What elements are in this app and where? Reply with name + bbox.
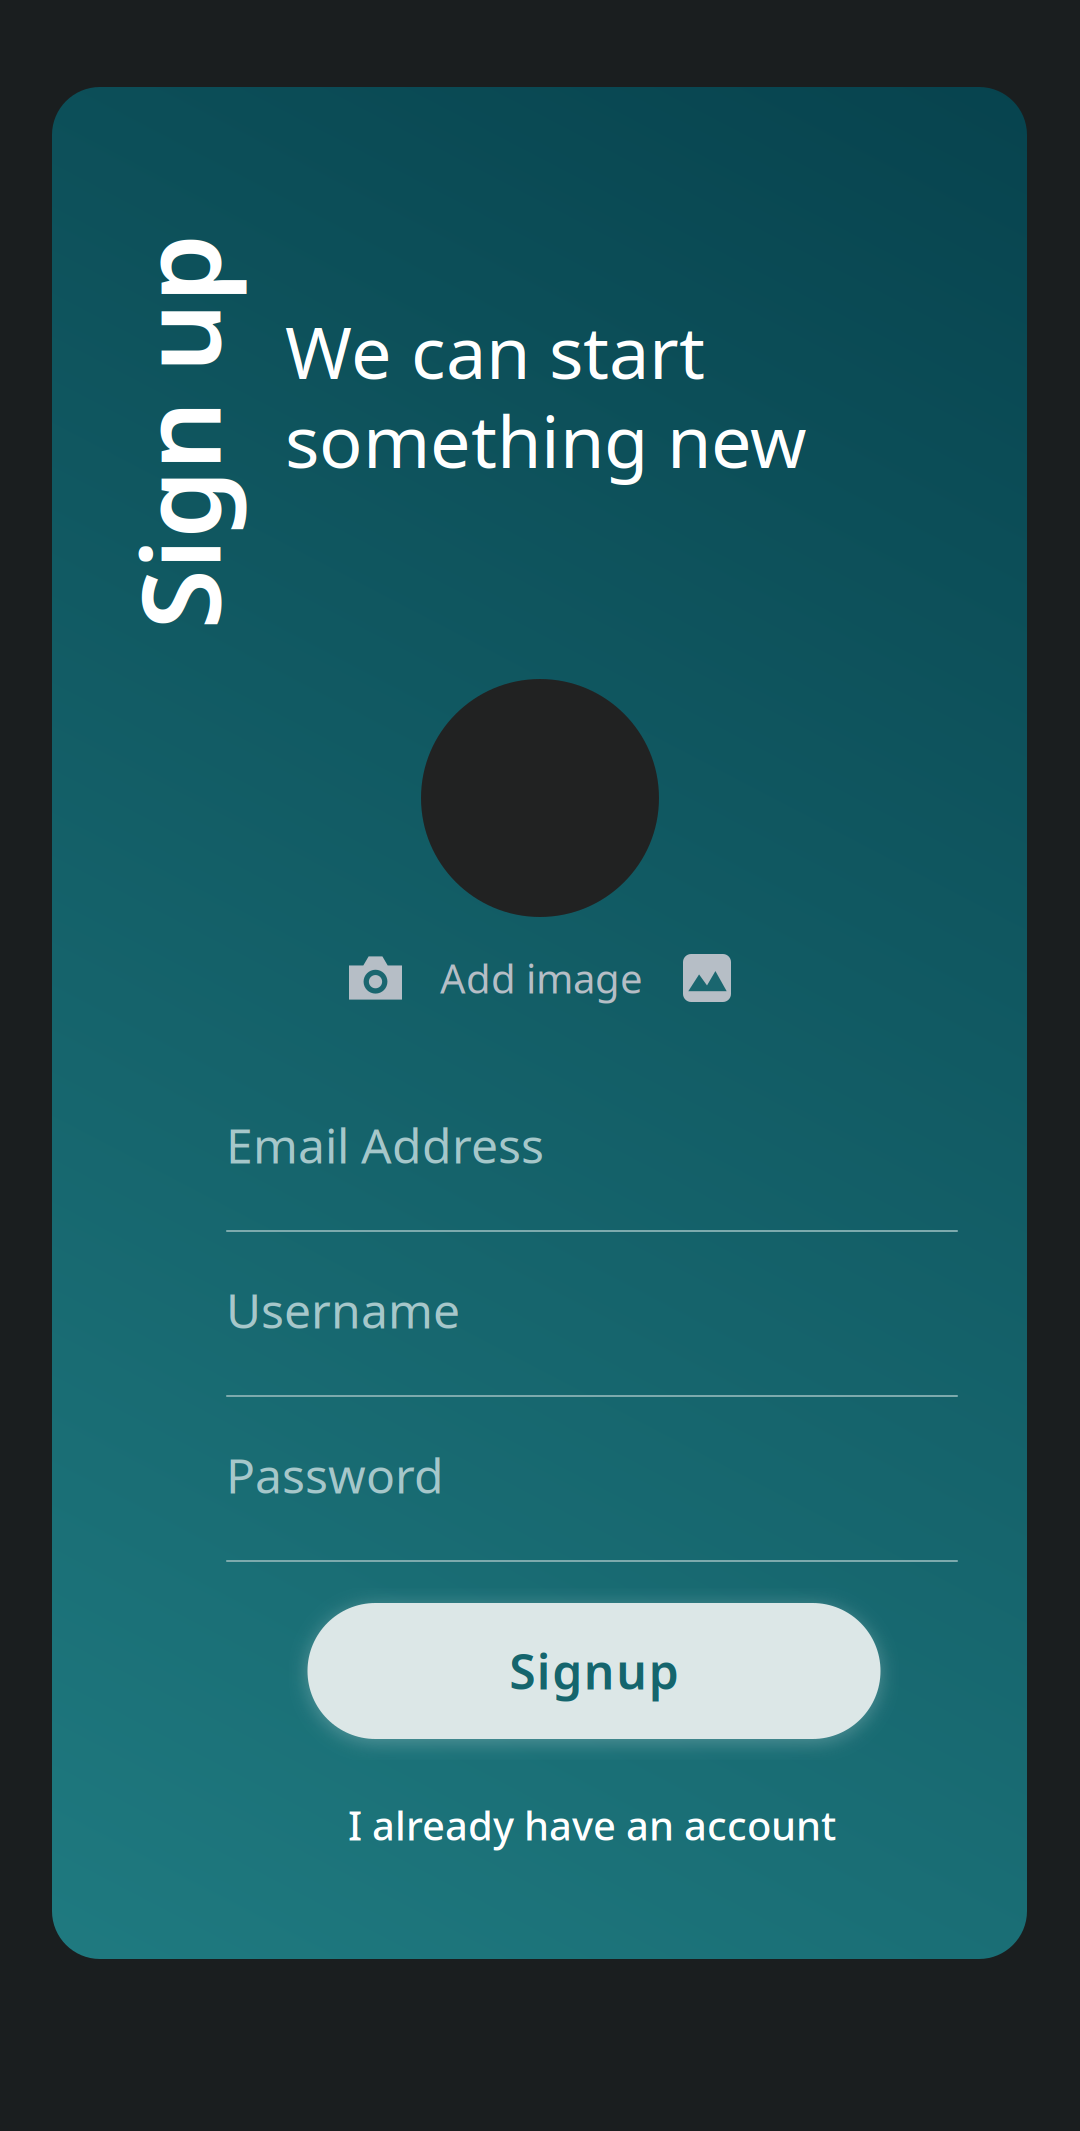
button[interactable]: Email Address xyxy=(226,1107,958,1233)
staticText: Email Address xyxy=(226,1113,544,1177)
button[interactable]: Profile photo xyxy=(421,679,659,917)
staticText: I already have an account xyxy=(348,1798,836,1851)
button[interactable]: Signup xyxy=(307,1603,880,1739)
button[interactable]: I already have an account xyxy=(348,1798,836,1851)
staticText: Password xyxy=(226,1443,444,1507)
staticText: Add image xyxy=(440,951,643,1004)
staticText: something new xyxy=(285,392,807,488)
button[interactable]: Username xyxy=(226,1272,958,1398)
button[interactable]: Password xyxy=(226,1437,958,1563)
button[interactable]: Take photo xyxy=(349,956,402,1000)
button[interactable]: Choose photo xyxy=(683,954,731,1002)
staticText: Sign up xyxy=(0,359,375,505)
staticText: We can start xyxy=(285,303,705,399)
staticText: Username xyxy=(226,1278,460,1342)
staticText: Signup xyxy=(509,1639,679,1703)
